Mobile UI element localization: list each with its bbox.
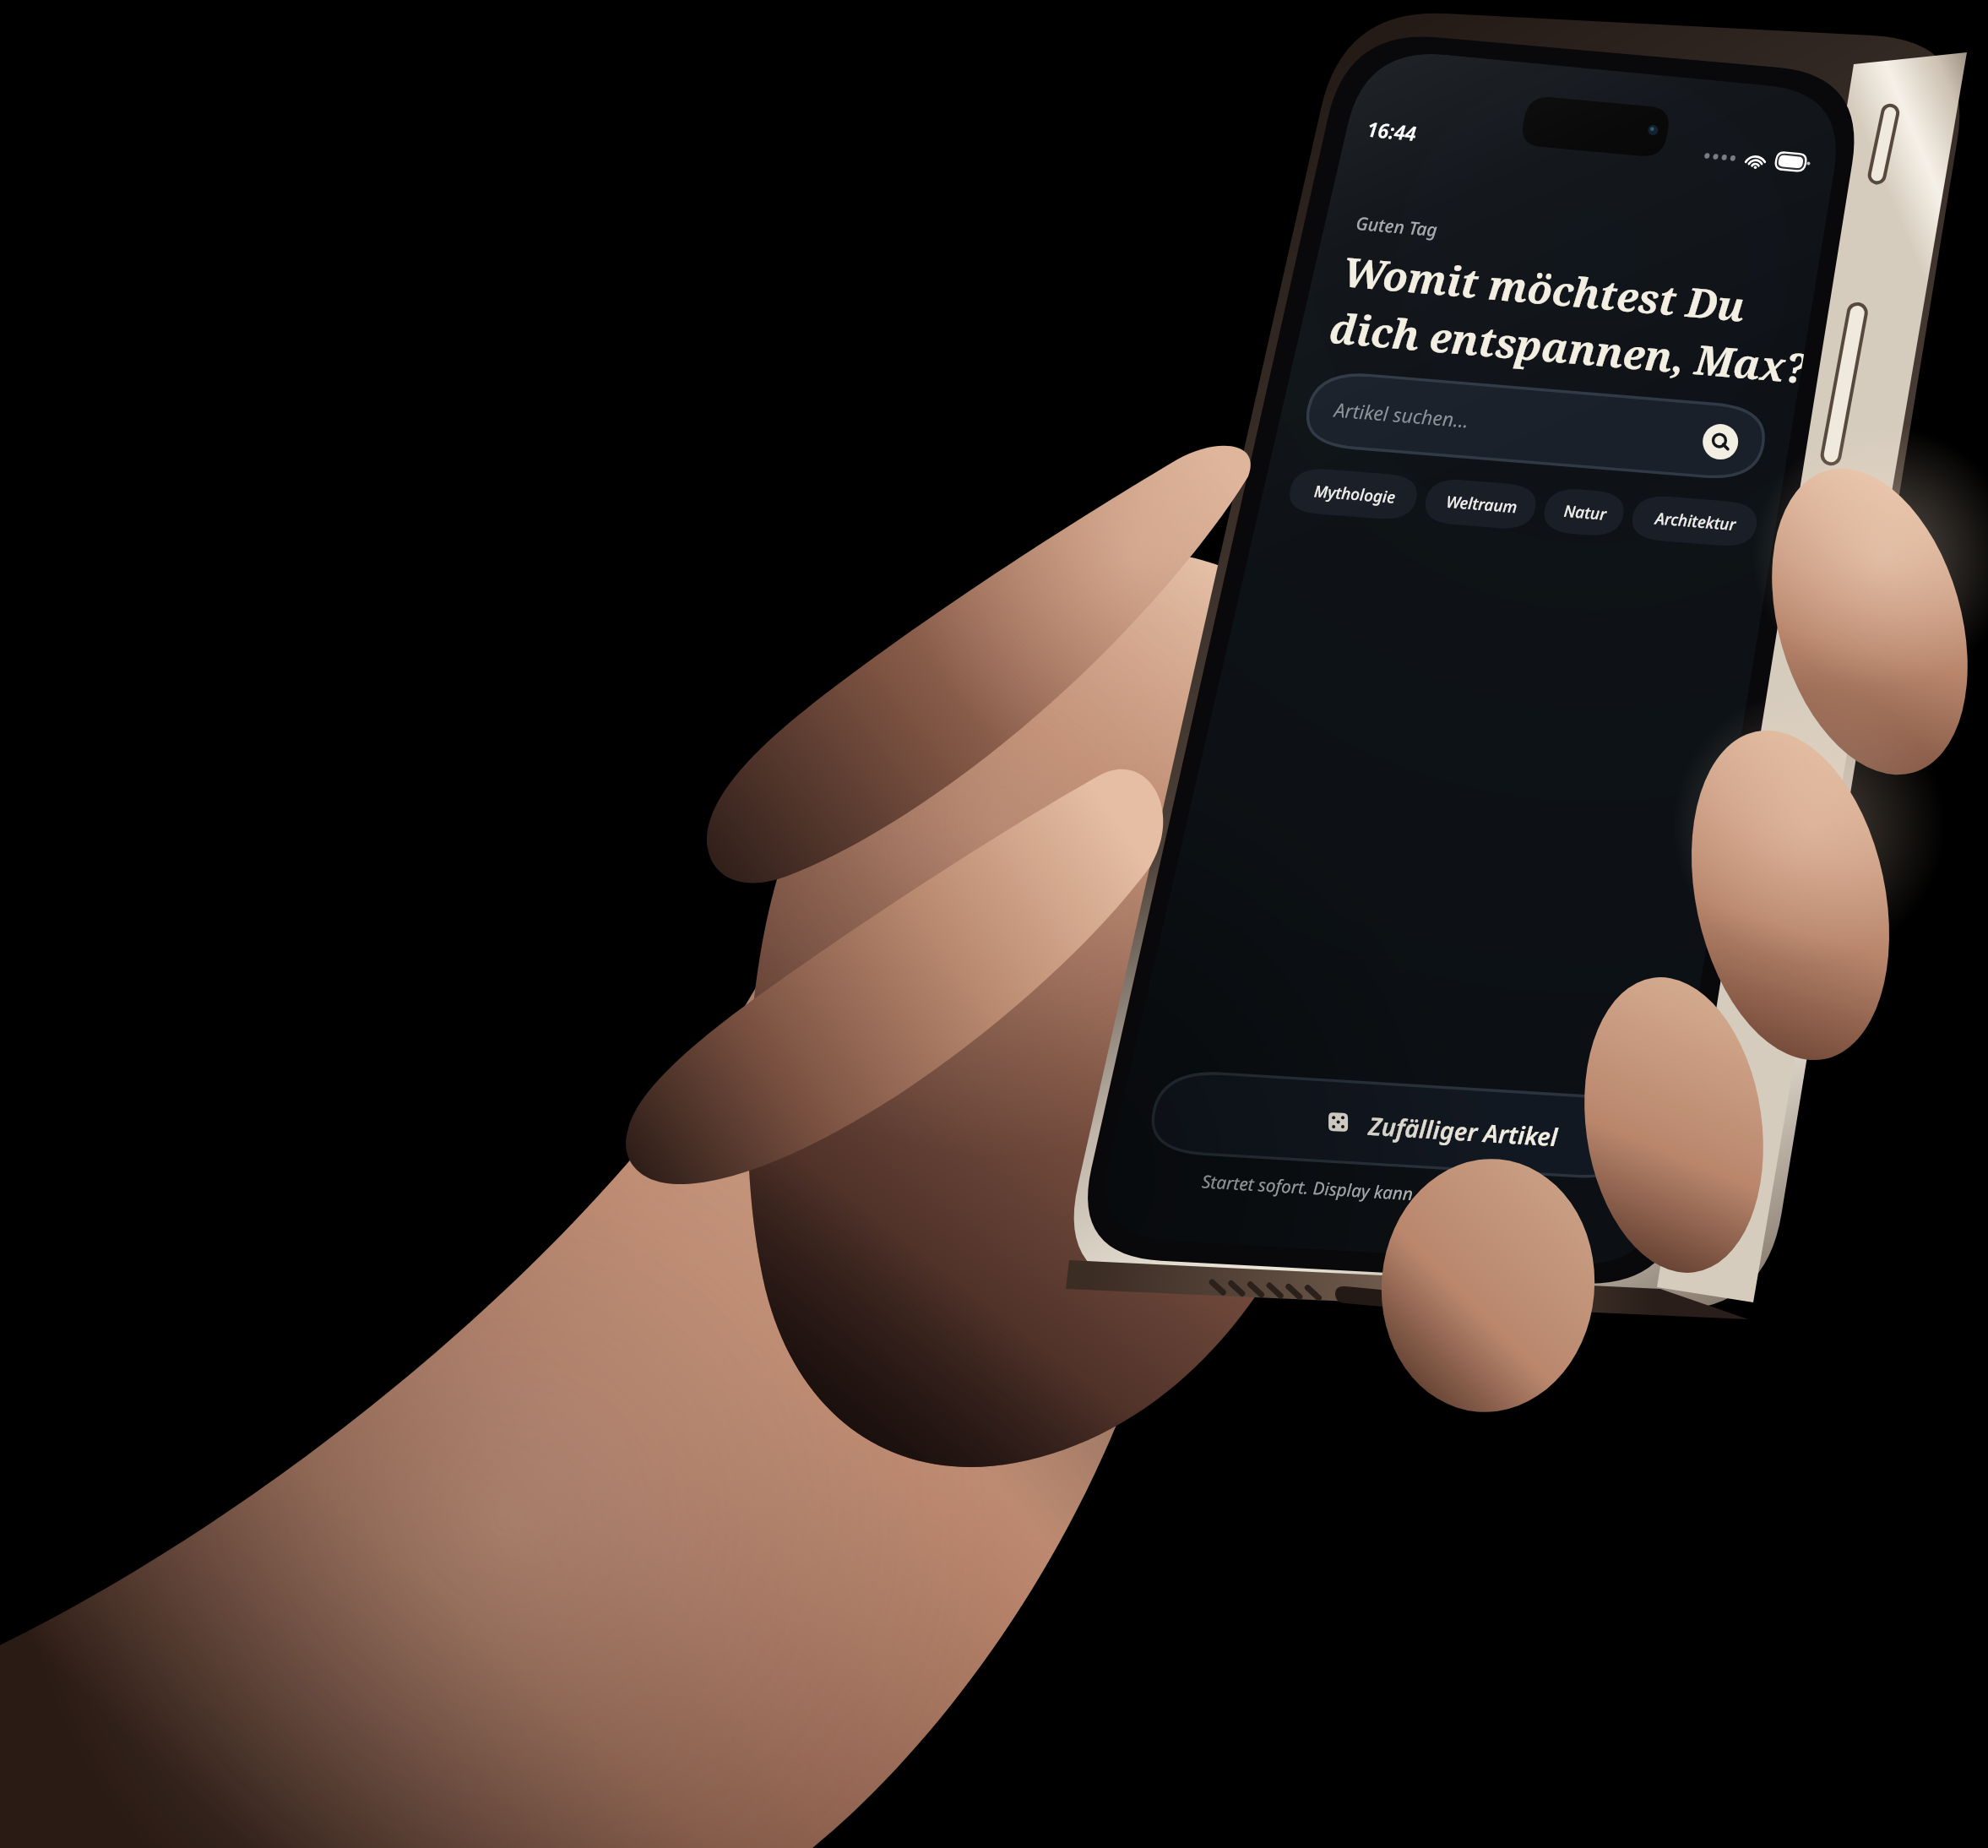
button[interactable]: Zufälligen Artikel starten xyxy=(0,0,1988,1848)
